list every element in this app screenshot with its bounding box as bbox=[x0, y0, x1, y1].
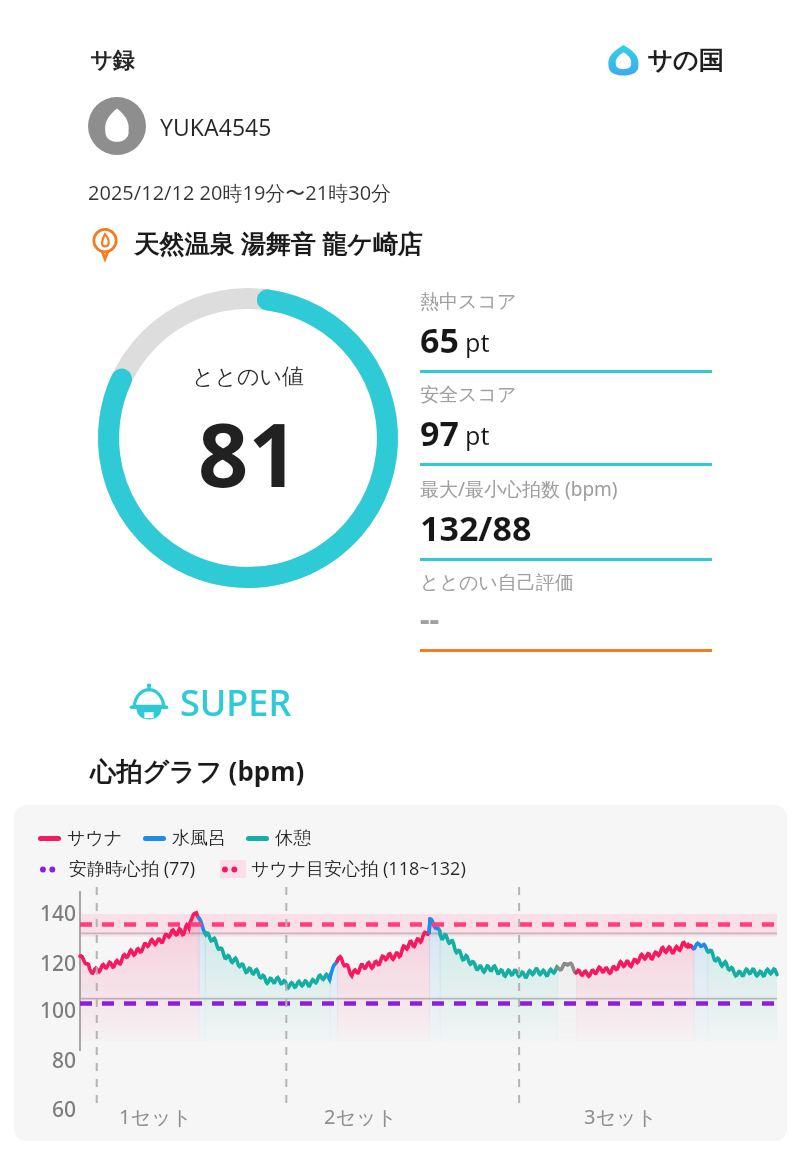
staticText: 60 bbox=[24, 1095, 76, 1124]
staticText: 天然温泉 湯舞音 龍ケ崎店 bbox=[134, 226, 423, 260]
staticText: 80 bbox=[24, 1046, 76, 1075]
button[interactable]: サの国 ホーム bbox=[607, 44, 724, 77]
staticText: ととのい自己評価 bbox=[420, 571, 574, 595]
button[interactable]: 安全スコア bbox=[420, 373, 712, 466]
staticText: ととのい値 bbox=[192, 363, 305, 391]
staticText: 81 bbox=[198, 393, 299, 513]
staticText: 最大/最小心拍数 (bpm) bbox=[420, 476, 618, 502]
button[interactable]: 最大/最小心拍数 (bpm) bbox=[420, 466, 712, 561]
staticText: 2セット bbox=[324, 1103, 397, 1130]
staticText: pt bbox=[465, 325, 490, 359]
staticText: 安全スコア bbox=[420, 383, 517, 407]
staticText: 3セット bbox=[584, 1103, 657, 1130]
button[interactable]: SUPER bbox=[128, 678, 292, 727]
staticText: 1セット bbox=[119, 1103, 192, 1130]
staticText: 安静時心拍 (77) bbox=[69, 856, 196, 881]
staticText: SUPER bbox=[180, 678, 292, 727]
staticText: -- bbox=[420, 598, 440, 639]
staticText: サウナ bbox=[67, 827, 123, 850]
button[interactable]: YUKA4545 bbox=[88, 97, 800, 155]
staticText: 65 bbox=[420, 317, 459, 363]
staticText: 水風呂 bbox=[172, 827, 226, 850]
staticText: 97 bbox=[420, 410, 459, 456]
staticText: YUKA4545 bbox=[160, 111, 272, 142]
staticText: pt bbox=[465, 418, 490, 452]
staticText: 熱中スコア bbox=[420, 290, 517, 314]
staticText: 132/88 bbox=[420, 505, 532, 551]
staticText: 100 bbox=[24, 996, 76, 1025]
staticText: 休憩 bbox=[275, 827, 311, 850]
button[interactable]: 熱中スコア bbox=[420, 280, 712, 373]
button[interactable]: サウナ bbox=[14, 805, 787, 1141]
staticText: サの国 bbox=[647, 45, 724, 76]
button[interactable]: 天然温泉 湯舞音 龍ケ崎店 bbox=[88, 226, 800, 260]
staticText: 2025/12/12 20時19分〜21時30分 bbox=[88, 179, 392, 206]
staticText: 120 bbox=[24, 949, 76, 978]
staticText: 心拍グラフ (bpm) bbox=[90, 753, 305, 789]
button[interactable]: ととのい自己評価 bbox=[420, 561, 712, 652]
staticText: サ録 bbox=[90, 47, 135, 75]
staticText: 140 bbox=[24, 899, 76, 928]
staticText: サウナ目安心拍 (118~132) bbox=[251, 856, 466, 881]
